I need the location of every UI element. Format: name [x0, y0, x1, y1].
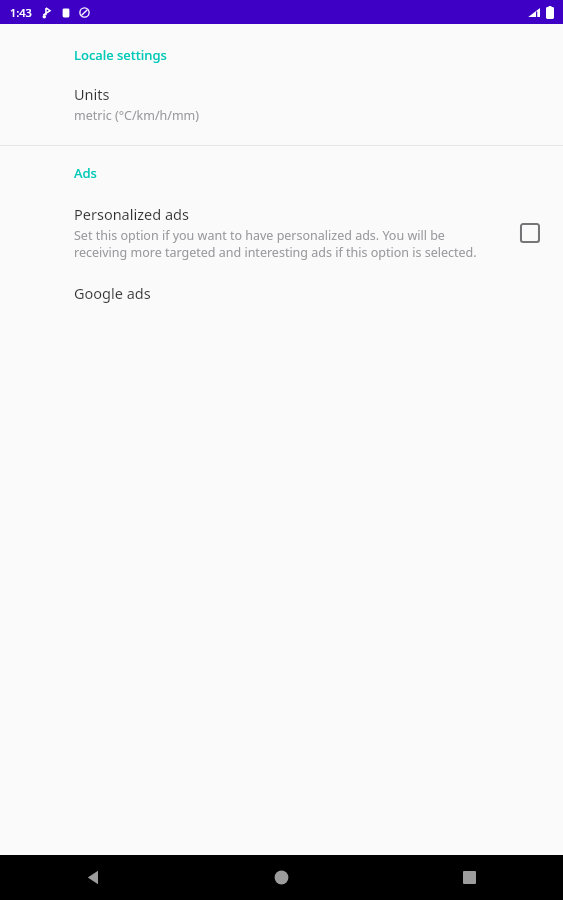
staticText: Personalized ads: [74, 204, 189, 224]
button[interactable]: Back: [0, 855, 187, 900]
staticText: Ads: [74, 164, 97, 182]
button[interactable]: Personalized ads: [0, 202, 563, 263]
button[interactable]: Home: [187, 855, 375, 900]
staticText: 1:43: [10, 5, 32, 20]
button[interactable]: Google ads: [0, 279, 563, 307]
button[interactable]: Personalized ads checkbox: [513, 216, 547, 250]
button[interactable]: Units: [0, 82, 563, 126]
staticText: metric (°C/km/h/mm): [74, 107, 200, 124]
button[interactable]: Recent apps: [375, 855, 563, 900]
staticText: Locale settings: [74, 46, 167, 64]
staticText: Set this option if you want to have pers…: [74, 227, 493, 261]
staticText: Units: [74, 84, 110, 104]
staticText: Google ads: [74, 283, 151, 303]
